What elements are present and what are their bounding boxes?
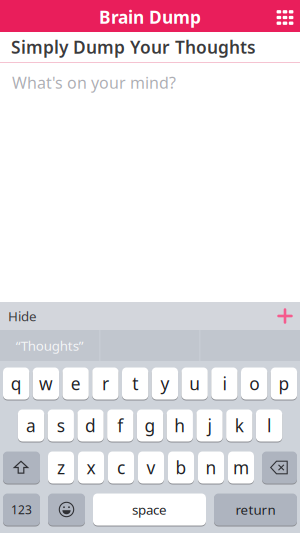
staticText: y [160,372,169,395]
staticText: Simply Dump Your Thoughts [11,35,256,58]
staticText: a [26,414,36,437]
button[interactable]: w [33,367,59,399]
staticText: return [235,501,275,518]
button[interactable]: v [138,451,164,483]
button[interactable]: b [168,451,194,483]
staticText: g [145,414,156,437]
button[interactable]: h [167,409,193,441]
staticText: k [235,414,244,437]
button[interactable]: j [196,409,223,441]
button[interactable]: n [198,451,224,483]
button[interactable]: f [107,409,133,441]
button[interactable]: Hide [0,307,37,325]
staticText: p [278,372,289,395]
button[interactable]: Delete [262,451,297,483]
button[interactable]: a [18,409,44,441]
button[interactable]: g [137,409,163,441]
staticText: t [132,372,138,395]
button[interactable]: m [228,451,254,483]
staticText: w [39,372,53,395]
button[interactable]: i [211,367,237,399]
staticText: e [71,372,81,395]
button[interactable]: return [214,493,297,525]
staticText: v [146,456,155,479]
button[interactable]: Add [271,302,299,330]
staticText: What's on your mind? [12,72,176,93]
staticText: s [57,414,65,437]
staticText: j [208,414,212,437]
staticText: n [205,456,216,479]
button[interactable]: l [256,409,282,441]
button[interactable]: z [48,451,74,483]
staticText: b [175,456,186,479]
staticText: m [233,456,249,479]
button[interactable]: “Thoughts” [0,330,99,361]
button[interactable]: p [271,367,297,399]
button[interactable]: r [92,367,118,399]
staticText: l [267,414,271,437]
button[interactable]: Categories [273,4,297,28]
staticText: u [189,372,200,395]
staticText: f [117,414,123,437]
staticText: Brain Dump [99,5,201,28]
staticText: “Thoughts” [16,337,84,354]
button[interactable]: s [48,409,74,441]
button[interactable]: u [181,367,208,399]
staticText: q [11,372,22,395]
staticText: i [222,372,226,395]
staticText: Hide [8,307,37,325]
staticText: x [86,456,95,479]
staticText: h [174,414,185,437]
button[interactable]: k [226,409,252,441]
button[interactable]: o [241,367,267,399]
staticText: c [117,456,125,479]
button[interactable]: q [3,367,29,399]
button[interactable]: c [108,451,134,483]
button[interactable]: Shift [3,451,40,483]
button[interactable]: y [152,367,178,399]
staticText: space [132,501,167,518]
button[interactable]: x [78,451,104,483]
button[interactable]: e [62,367,89,399]
staticText: r [102,372,109,395]
button[interactable]: Numbers [3,493,40,525]
staticText: o [249,372,259,395]
button[interactable]: d [77,409,104,441]
button[interactable]: t [122,367,148,399]
staticText: 123 [11,501,32,517]
staticText: d [85,414,96,437]
staticText: z [57,456,65,479]
button[interactable]: space [93,493,206,525]
button[interactable]: Emoji [48,493,85,525]
